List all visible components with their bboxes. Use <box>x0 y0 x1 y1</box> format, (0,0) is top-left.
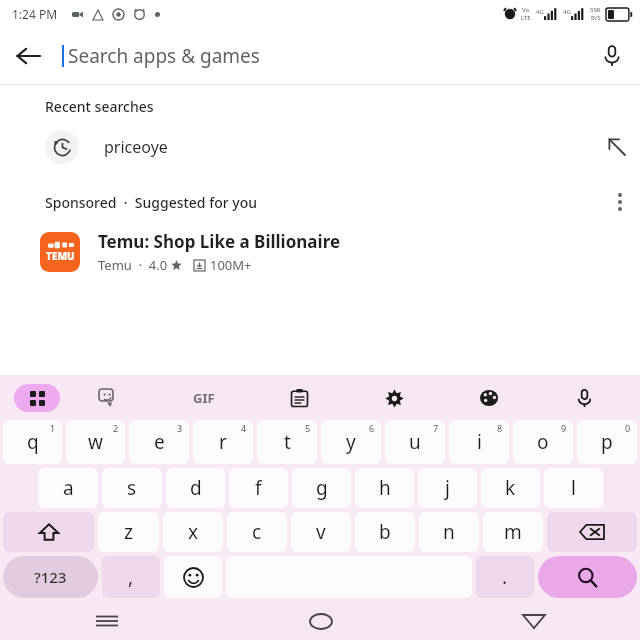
staticText: p <box>601 429 613 455</box>
staticText: ?123 <box>34 567 67 587</box>
button[interactable]: h <box>355 468 414 508</box>
button[interactable]: priceoye <box>0 124 640 170</box>
button[interactable]: q <box>3 420 62 464</box>
staticText: . <box>502 564 508 590</box>
staticText: Temu · 4.0 <box>98 256 171 274</box>
staticText: 4G <box>536 8 544 16</box>
staticText: 100M+ <box>210 256 252 274</box>
button[interactable]: Backspace <box>547 512 637 552</box>
button[interactable]: b <box>355 512 415 552</box>
staticText: Temu: Shop Like a Billionaire <box>98 230 341 253</box>
button[interactable]: . <box>476 556 534 598</box>
button[interactable]: Insert priceoye <box>594 124 640 170</box>
button[interactable]: Search apps & games <box>56 28 584 84</box>
button[interactable]: GIF <box>156 379 252 417</box>
button[interactable]: f <box>229 468 288 508</box>
staticText: v <box>316 519 326 545</box>
button[interactable]: e <box>129 420 189 464</box>
button[interactable]: a <box>38 468 98 508</box>
staticText: w <box>88 429 103 455</box>
button[interactable]: Stickers <box>60 379 156 417</box>
button[interactable]: y <box>321 420 381 464</box>
button[interactable]: o <box>513 420 573 464</box>
staticText: , <box>128 564 134 590</box>
staticText: Vo <box>522 6 530 14</box>
button[interactable]: w <box>66 420 125 464</box>
button[interactable]: Clipboard <box>252 379 347 417</box>
button[interactable]: d <box>166 468 225 508</box>
staticText: e <box>154 429 165 455</box>
button[interactable]: TEMU <box>0 228 640 282</box>
staticText: m <box>504 519 522 545</box>
button[interactable]: l <box>544 468 603 508</box>
button[interactable]: Themes <box>442 379 537 417</box>
staticText: GIF <box>193 389 215 407</box>
staticText: s <box>127 475 137 501</box>
button[interactable]: c <box>227 512 287 552</box>
staticText: 6 <box>369 422 375 434</box>
staticText: 598 <box>590 6 601 14</box>
button[interactable]: Back <box>427 602 640 640</box>
staticText: u <box>409 429 421 455</box>
staticText: LTE <box>521 14 531 22</box>
button[interactable]: g <box>292 468 351 508</box>
staticText: 2 <box>113 422 119 434</box>
staticText: 9 <box>561 422 567 434</box>
staticText: 1:24 PM <box>12 6 58 22</box>
button[interactable]: Keyboard modes <box>14 384 60 412</box>
staticText: j <box>445 475 450 501</box>
button[interactable]: ?123 <box>3 556 98 598</box>
staticText: Recent searches <box>45 97 154 116</box>
staticText: 3 <box>177 422 183 434</box>
button[interactable]: Back <box>0 28 56 84</box>
button[interactable]: r <box>193 420 253 464</box>
button[interactable]: v <box>291 512 351 552</box>
staticText: x <box>188 519 199 545</box>
staticText: Sponsored · Suggested for you <box>45 193 258 212</box>
button[interactable]: Voice input <box>537 379 632 417</box>
button[interactable]: Search <box>538 556 637 598</box>
button[interactable]: i <box>449 420 509 464</box>
staticText: i <box>477 429 482 455</box>
staticText: q <box>27 429 39 455</box>
staticText: Search apps & games <box>68 43 260 69</box>
button[interactable]: n <box>419 512 479 552</box>
button[interactable]: Emoji <box>164 556 222 598</box>
staticText: TEMU <box>46 249 75 263</box>
staticText: b <box>379 519 391 545</box>
staticText: priceoye <box>104 136 168 158</box>
button[interactable]: , <box>102 556 160 598</box>
button[interactable]: Shift <box>3 512 94 552</box>
button[interactable]: p <box>577 420 637 464</box>
staticText: g <box>316 475 328 501</box>
staticText: B/S <box>591 14 601 22</box>
button[interactable]: k <box>481 468 540 508</box>
staticText: n <box>443 519 455 545</box>
staticText: 4 <box>241 422 247 434</box>
staticText: h <box>379 475 391 501</box>
staticText: l <box>571 475 576 501</box>
button[interactable]: Home <box>214 602 427 640</box>
staticText: 1 <box>50 422 56 434</box>
staticText: a <box>63 475 74 501</box>
button[interactable]: s <box>102 468 162 508</box>
button[interactable]: u <box>385 420 445 464</box>
staticText: 8 <box>497 422 503 434</box>
staticText: r <box>219 429 227 455</box>
button[interactable]: t <box>257 420 317 464</box>
button[interactable]: Recents <box>0 602 214 640</box>
button[interactable]: Voice search <box>584 28 640 84</box>
staticText: z <box>124 519 133 545</box>
staticText: k <box>505 475 516 501</box>
button[interactable]: x <box>163 512 223 552</box>
staticText: t <box>284 429 291 455</box>
staticText: o <box>537 429 549 455</box>
button[interactable]: j <box>418 468 477 508</box>
button[interactable]: z <box>98 512 159 552</box>
button[interactable]: Settings <box>347 379 442 417</box>
button[interactable]: More options <box>600 182 640 222</box>
staticText: 0 <box>625 422 631 434</box>
button[interactable]: m <box>483 512 543 552</box>
staticText: 4G <box>563 8 571 16</box>
